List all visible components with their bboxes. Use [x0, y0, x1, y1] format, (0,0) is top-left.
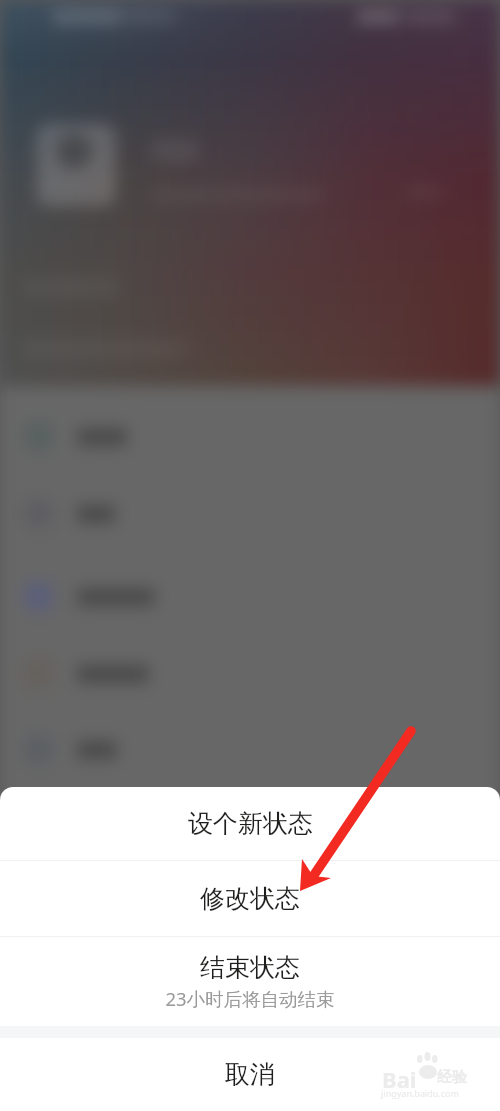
button[interactable]: 设个新状态 — [0, 787, 500, 860]
staticText: Bai — [382, 1064, 417, 1094]
staticText: jingyan.baidu.com — [381, 1087, 459, 1099]
button[interactable]: 结束状态 — [0, 937, 500, 1026]
staticText: 取消 — [225, 1059, 275, 1090]
staticText: 经验 — [437, 1068, 467, 1087]
other: Pointer annotation — [0, 0, 500, 1111]
staticText: 设个新状态 — [188, 808, 313, 839]
button[interactable]: 修改状态 — [0, 861, 500, 936]
staticText: 结束状态 — [200, 952, 300, 983]
staticText: 23小时后将自动结束 — [165, 986, 335, 1011]
button[interactable]: 取消 — [0, 1038, 500, 1111]
staticText: 修改状态 — [200, 883, 300, 914]
